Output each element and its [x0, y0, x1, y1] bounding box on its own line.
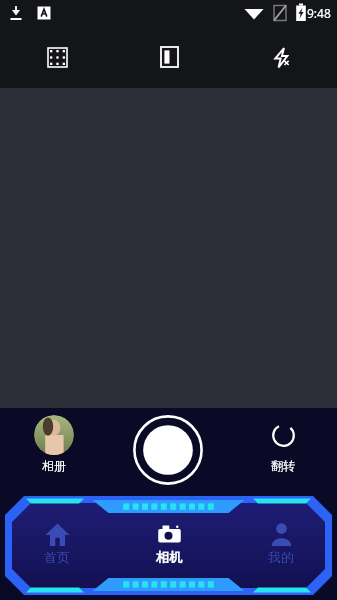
- button[interactable]: Shutter: [133, 415, 203, 485]
- button[interactable]: 翻转: [263, 415, 303, 473]
- staticText: 相册: [42, 458, 66, 473]
- button[interactable]: 相机: [113, 511, 225, 576]
- button[interactable]: 首页: [0, 511, 113, 576]
- button[interactable]: 相册: [34, 415, 74, 473]
- button[interactable]: 我的: [225, 511, 337, 576]
- staticText: 9:48: [307, 5, 331, 21]
- staticText: 相机: [156, 549, 182, 565]
- staticText: 我的: [268, 549, 294, 565]
- button[interactable]: Aspect ratio: [147, 35, 191, 79]
- button[interactable]: Grid lines: [35, 35, 79, 79]
- button[interactable]: Flash off: [259, 35, 303, 79]
- staticText: 翻转: [271, 458, 295, 473]
- staticText: 首页: [44, 549, 70, 565]
